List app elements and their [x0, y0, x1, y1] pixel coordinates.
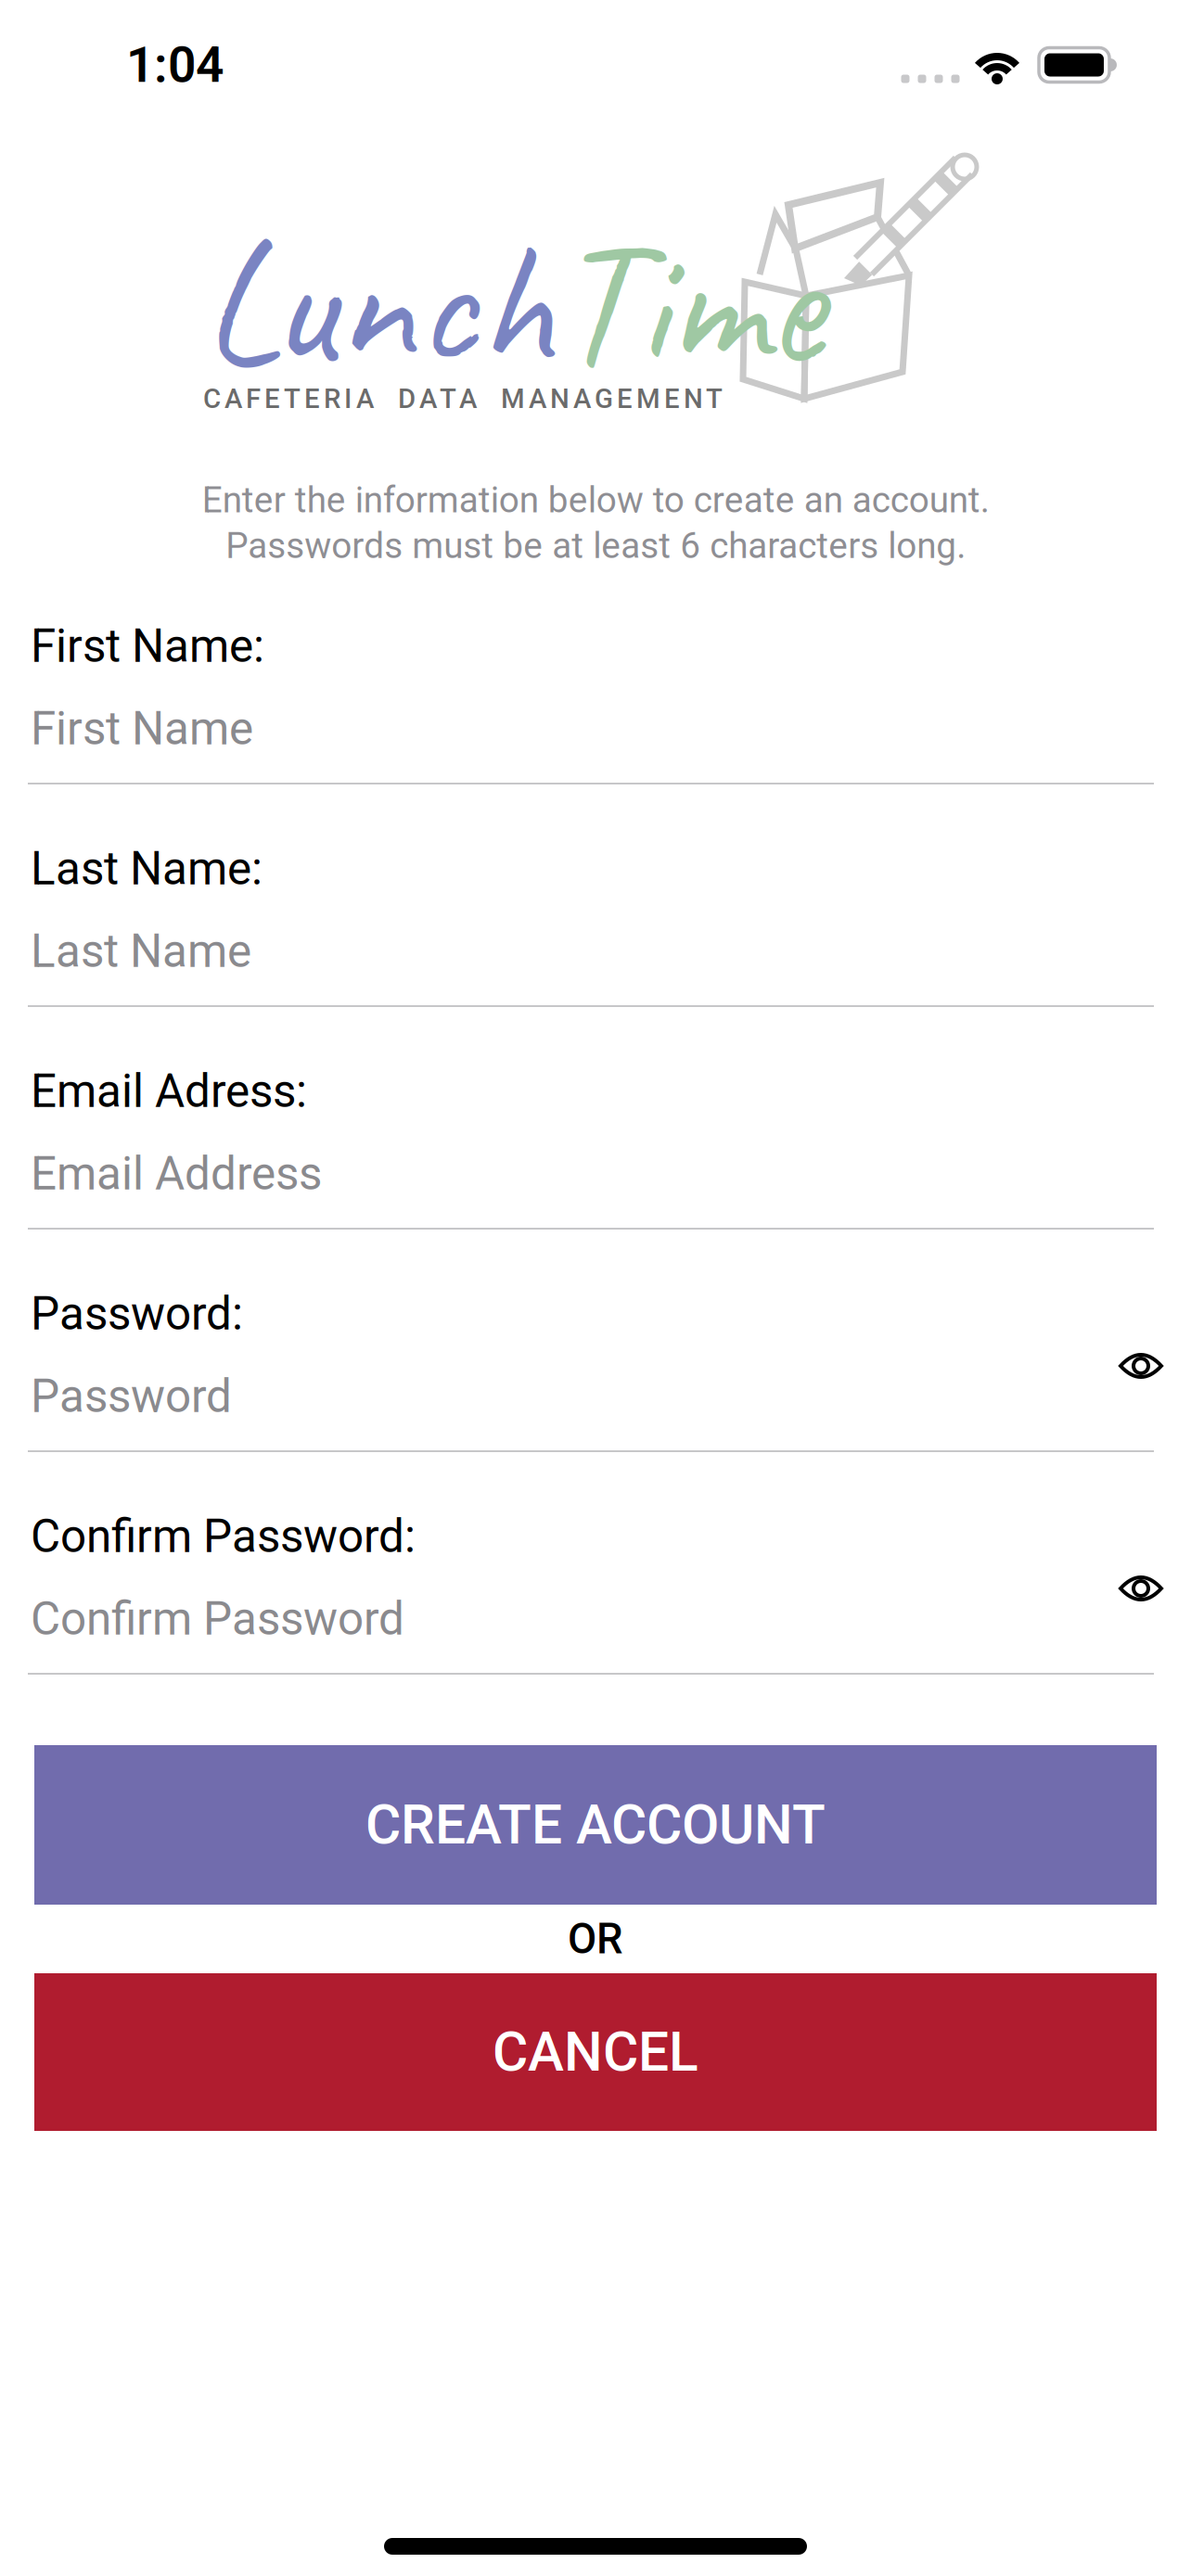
button[interactable]: Confirm Password: [31, 1576, 1160, 1662]
button[interactable]: Password: [31, 1354, 1160, 1439]
staticText: Lunch: [201, 192, 554, 413]
staticText: First Name: [31, 702, 253, 756]
staticText: Confirm Password: [31, 1592, 404, 1646]
staticText: Password: [31, 1370, 232, 1423]
button[interactable]: Show password: [1119, 1573, 1163, 1604]
staticText: CREATE ACCOUNT: [365, 1793, 826, 1857]
button[interactable]: Last Name: [31, 909, 1160, 994]
button[interactable]: Show password: [1119, 1350, 1163, 1382]
staticText: Email Adress:: [31, 1065, 307, 1118]
staticText: Confirm Password:: [31, 1510, 416, 1563]
staticText: OR: [568, 1914, 623, 1964]
staticText: Last Name:: [31, 842, 263, 896]
button[interactable]: First Name: [31, 686, 1160, 772]
button[interactable]: Email Address: [31, 1131, 1160, 1217]
button[interactable]: CANCEL: [34, 1973, 1157, 2131]
staticText: Enter the information below to create an…: [202, 479, 989, 567]
staticText: Last Name: [31, 925, 251, 978]
button[interactable]: CREATE ACCOUNT: [34, 1745, 1157, 1905]
staticText: CANCEL: [493, 2020, 698, 2084]
staticText: CAFETERIA DATA MANAGEMENT: [203, 383, 723, 415]
staticText: First Name:: [31, 620, 264, 673]
staticText: Time: [554, 192, 823, 413]
staticText: 1:04: [126, 36, 224, 94]
staticText: Password:: [31, 1287, 243, 1341]
staticText: Email Address: [31, 1147, 322, 1201]
